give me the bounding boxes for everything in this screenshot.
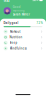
button[interactable]: Mindfulness bbox=[0, 46, 46, 51]
staticText: Mindfulness bbox=[9, 47, 26, 50]
staticText: Daily goal bbox=[4, 21, 19, 25]
staticText: Good morning bbox=[13, 5, 25, 12]
staticText: Workout bbox=[9, 30, 20, 33]
staticText: Sleep bbox=[9, 41, 17, 44]
button[interactable]: Workout bbox=[0, 29, 46, 34]
staticText: Sarah Miller bbox=[13, 13, 30, 16]
staticText: 9:41 bbox=[3, 0, 10, 3]
staticText: 72% bbox=[36, 21, 42, 25]
button[interactable]: Profile bbox=[4, 7, 11, 14]
staticText: Nutrition bbox=[9, 35, 22, 39]
button[interactable]: Sleep bbox=[0, 40, 46, 46]
button[interactable]: Nutrition bbox=[0, 34, 46, 40]
